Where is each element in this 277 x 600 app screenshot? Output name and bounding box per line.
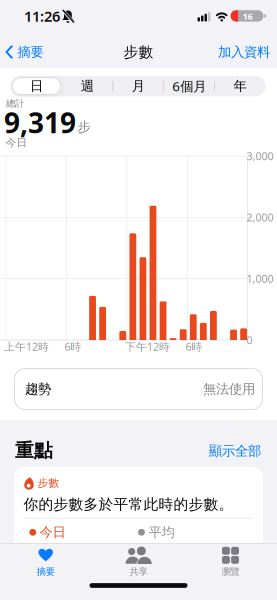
button[interactable]: 摘要 bbox=[11, 545, 81, 579]
staticText: 日 bbox=[30, 78, 43, 94]
button[interactable]: 月 bbox=[113, 76, 164, 96]
button[interactable]: 趨勢 bbox=[14, 368, 263, 410]
staticText: 摘要 bbox=[17, 44, 43, 60]
staticText: 週 bbox=[81, 78, 94, 94]
staticText: 趨勢 bbox=[25, 381, 51, 397]
staticText: 月 bbox=[132, 78, 145, 94]
staticText: 0 bbox=[246, 333, 252, 347]
staticText: 步數 bbox=[123, 43, 153, 61]
staticText: 加入資料 bbox=[218, 44, 270, 60]
button[interactable]: 步數 bbox=[14, 467, 263, 567]
staticText: 摘要 bbox=[37, 566, 55, 577]
staticText: 重點 bbox=[15, 439, 53, 462]
staticText: 顯示全部 bbox=[209, 443, 261, 459]
button[interactable]: 共享 bbox=[103, 545, 173, 579]
staticText: 總計 bbox=[6, 98, 24, 109]
staticText: 2,000 bbox=[246, 210, 273, 224]
staticText: 16 bbox=[242, 10, 252, 22]
staticText: 你的步數多於平常此時的步數。 bbox=[23, 495, 233, 513]
staticText: 6時 bbox=[185, 339, 202, 354]
button[interactable]: 加入資料 bbox=[206, 42, 270, 62]
staticText: 共享 bbox=[129, 566, 147, 577]
staticText: 步數 bbox=[37, 476, 59, 489]
staticText: 瀏覽 bbox=[221, 566, 239, 577]
staticText: 6個月 bbox=[172, 77, 206, 95]
staticText: 步 bbox=[77, 119, 90, 135]
staticText: 9,319 bbox=[4, 104, 76, 141]
staticText: 無法使用 bbox=[203, 381, 255, 397]
button[interactable]: 週 bbox=[62, 76, 113, 96]
staticText: 今日 bbox=[39, 524, 65, 540]
staticText: 年 bbox=[233, 78, 246, 94]
button[interactable]: 顯示全部 bbox=[208, 442, 262, 460]
button[interactable]: 瀏覽 bbox=[195, 545, 265, 579]
staticText: 11:26 bbox=[24, 6, 60, 26]
button[interactable]: 年 bbox=[215, 76, 265, 96]
staticText: 上午12時 bbox=[4, 339, 49, 354]
staticText: 3,000 bbox=[246, 149, 273, 163]
staticText: 1,000 bbox=[246, 272, 273, 286]
staticText: 平均 bbox=[148, 524, 174, 540]
staticText: 6時 bbox=[64, 339, 81, 354]
button[interactable]: 摘要 bbox=[5, 42, 65, 62]
staticText: 今日 bbox=[5, 136, 27, 149]
staticText: 下午12時 bbox=[125, 339, 170, 354]
button[interactable]: 6個月 bbox=[164, 76, 215, 96]
button[interactable]: 日 bbox=[11, 76, 62, 96]
